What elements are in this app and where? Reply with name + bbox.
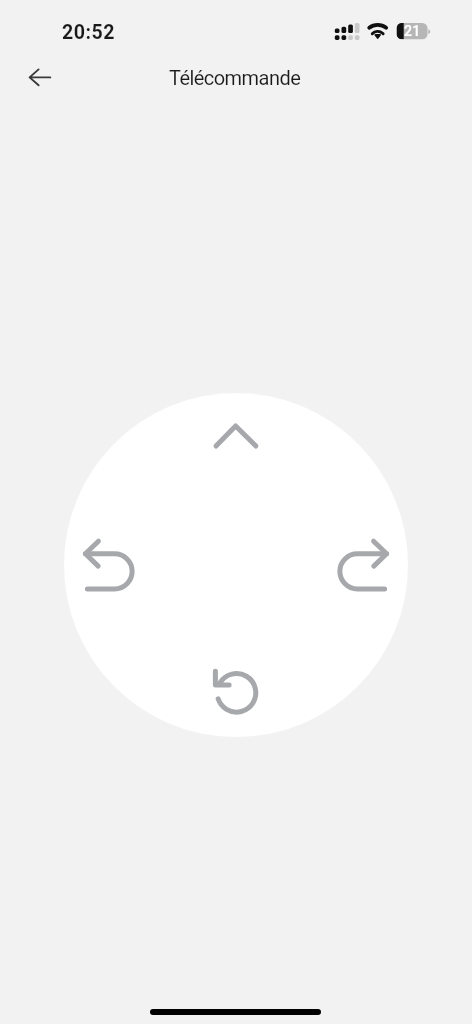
button[interactable]: Redo xyxy=(319,529,391,601)
staticText: Télécommande xyxy=(169,66,301,89)
staticText: 20:52 xyxy=(62,21,115,44)
button[interactable]: Back xyxy=(16,55,64,103)
button[interactable]: Undo xyxy=(81,529,153,601)
staticText: 21 xyxy=(404,23,422,40)
button[interactable]: Reset xyxy=(200,657,272,729)
button[interactable]: Up xyxy=(200,399,272,471)
